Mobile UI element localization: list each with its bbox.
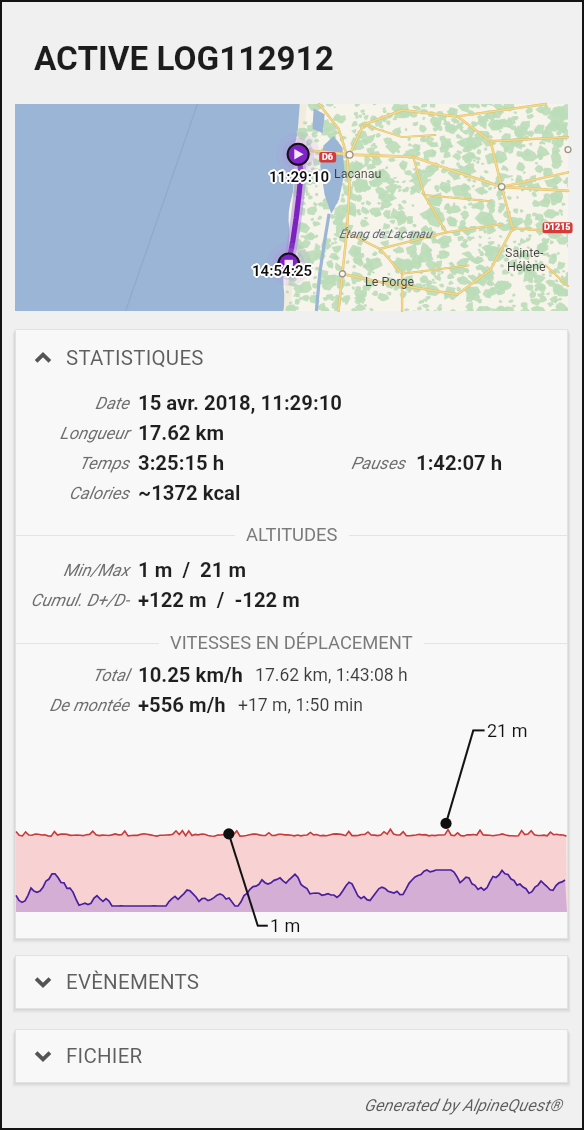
staticText: 1:42:07 h <box>416 451 503 475</box>
staticText: 11:29:10 <box>270 168 331 186</box>
staticText: 11:29:10 <box>269 168 330 186</box>
staticText: VITESSES EN DÉPLACEMENT <box>170 632 413 654</box>
staticText: ~1372 kcal <box>138 481 241 505</box>
staticText: Longueur <box>59 423 129 443</box>
staticText: 14:54:25 <box>250 262 311 280</box>
staticText: 14:54:25 <box>251 263 312 281</box>
staticText: 14:54:25 <box>254 262 315 280</box>
staticText: De montée <box>49 695 129 715</box>
staticText: 14:54:25 <box>252 260 313 278</box>
staticText: 14:54:25 <box>252 261 313 279</box>
staticText: Hélène <box>507 259 546 274</box>
staticText: Le Porge <box>365 274 415 289</box>
staticText: +17 m, 1:50 min <box>238 695 364 716</box>
staticText: 1 m / 21 m <box>138 558 246 582</box>
staticText: Min/Max <box>63 560 129 580</box>
staticText: 11:29:10 <box>269 168 330 186</box>
staticText: Cumul. D+/D- <box>30 590 129 610</box>
staticText: 14:54:25 <box>252 263 313 281</box>
staticText: 11:29:10 <box>270 169 331 187</box>
staticText: 11:29:10 <box>269 166 330 184</box>
staticText: 14:54:25 <box>253 262 314 280</box>
staticText: FICHIER <box>66 1044 143 1068</box>
staticText: 11:29:10 <box>269 167 330 185</box>
staticText: 11:29:10 <box>269 170 330 188</box>
staticText: Lacanau <box>334 166 382 181</box>
staticText: Date <box>95 393 129 413</box>
staticText: 15 avr. 2018, 11:29:10 <box>138 391 342 415</box>
staticText: D6 <box>322 152 334 163</box>
staticText: 14:54:25 <box>253 261 314 279</box>
staticText: 11:29:10 <box>268 168 329 186</box>
staticText: 11:29:10 <box>268 167 329 185</box>
staticText: 11:29:10 <box>269 169 330 187</box>
staticText: +122 m / -122 m <box>138 588 300 612</box>
staticText: 3:25:15 h <box>138 451 225 475</box>
staticText: 14:54:25 <box>253 263 314 281</box>
staticText: Sainte- <box>505 245 544 260</box>
staticText: 14:54:25 <box>252 264 313 282</box>
staticText: 14:54:25 <box>252 262 313 280</box>
staticText: 17.62 km <box>138 421 224 445</box>
staticText: ACTIVE LOG112912 <box>34 39 334 78</box>
staticText: Temps <box>79 453 129 473</box>
staticText: 11:29:10 <box>271 168 332 186</box>
staticText: 14:54:25 <box>251 261 312 279</box>
staticText: 14:54:25 <box>251 262 312 280</box>
staticText: Calories <box>69 483 129 503</box>
staticText: STATISTIQUES <box>66 346 204 370</box>
staticText: 11:29:10 <box>270 167 331 185</box>
staticText: D1215 <box>544 222 571 233</box>
button[interactable]: EVÈNEMENTS <box>16 970 567 994</box>
button[interactable]: STATISTIQUES <box>16 346 567 370</box>
staticText: Étang de Lacanau <box>339 227 432 241</box>
staticText: 1 m <box>270 915 301 936</box>
button[interactable]: FICHIER <box>16 1044 567 1068</box>
staticText: Total <box>92 665 129 685</box>
staticText: 21 m <box>487 720 528 741</box>
staticText: 11:29:10 <box>268 169 329 187</box>
staticText: ALTITUDES <box>246 524 338 546</box>
staticText: EVÈNEMENTS <box>66 970 200 994</box>
staticText: Pauses <box>351 453 406 473</box>
staticText: 14:54:25 <box>252 262 313 280</box>
staticText: 11:29:10 <box>267 168 328 186</box>
staticText: Generated by AlpineQuest® <box>364 1096 562 1115</box>
staticText: 10.25 km/h <box>138 663 243 687</box>
staticText: +556 m/h <box>138 693 226 717</box>
staticText: 17.62 km, 1:43:08 h <box>255 665 408 686</box>
